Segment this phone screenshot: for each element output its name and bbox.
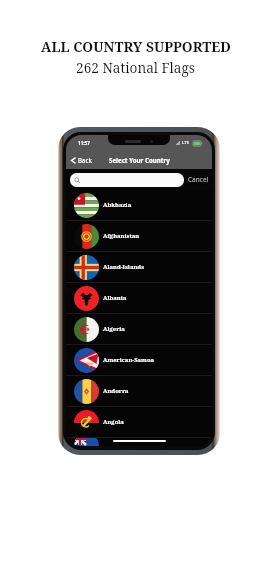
button[interactable]: Algeria — [66, 314, 212, 345]
button[interactable]: Angola — [66, 407, 212, 438]
button[interactable] — [70, 173, 184, 187]
staticText: Back — [78, 156, 92, 164]
staticText: Cancel — [188, 175, 209, 184]
staticText: Albania — [103, 294, 127, 302]
staticText: Select Your Country — [109, 156, 170, 164]
staticText: American-Samoa — [103, 356, 155, 364]
button[interactable]: Albania — [66, 283, 212, 314]
button[interactable]: Back — [70, 154, 93, 166]
staticText: Algeria — [103, 325, 125, 333]
button[interactable]: Cancel — [184, 175, 212, 184]
button[interactable]: Andorra — [66, 376, 212, 407]
button[interactable]: American-Samoa — [66, 345, 212, 376]
staticText: Angola — [103, 418, 124, 426]
staticText: 262 National Flags — [76, 58, 195, 77]
staticText: Aland-Islands — [103, 263, 145, 271]
button[interactable]: Abkhazia — [66, 190, 212, 221]
staticText: ALL COUNTRY SUPPORTED — [41, 37, 231, 56]
staticText: Afghanistan — [103, 232, 140, 240]
staticText: LTE — [182, 140, 190, 146]
staticText: Andorra — [103, 387, 129, 395]
button[interactable]: Afghanistan — [66, 221, 212, 252]
staticText: Abkhazia — [103, 201, 132, 209]
staticText: 11:57 — [78, 140, 90, 146]
button[interactable]: Aland-Islands — [66, 252, 212, 283]
